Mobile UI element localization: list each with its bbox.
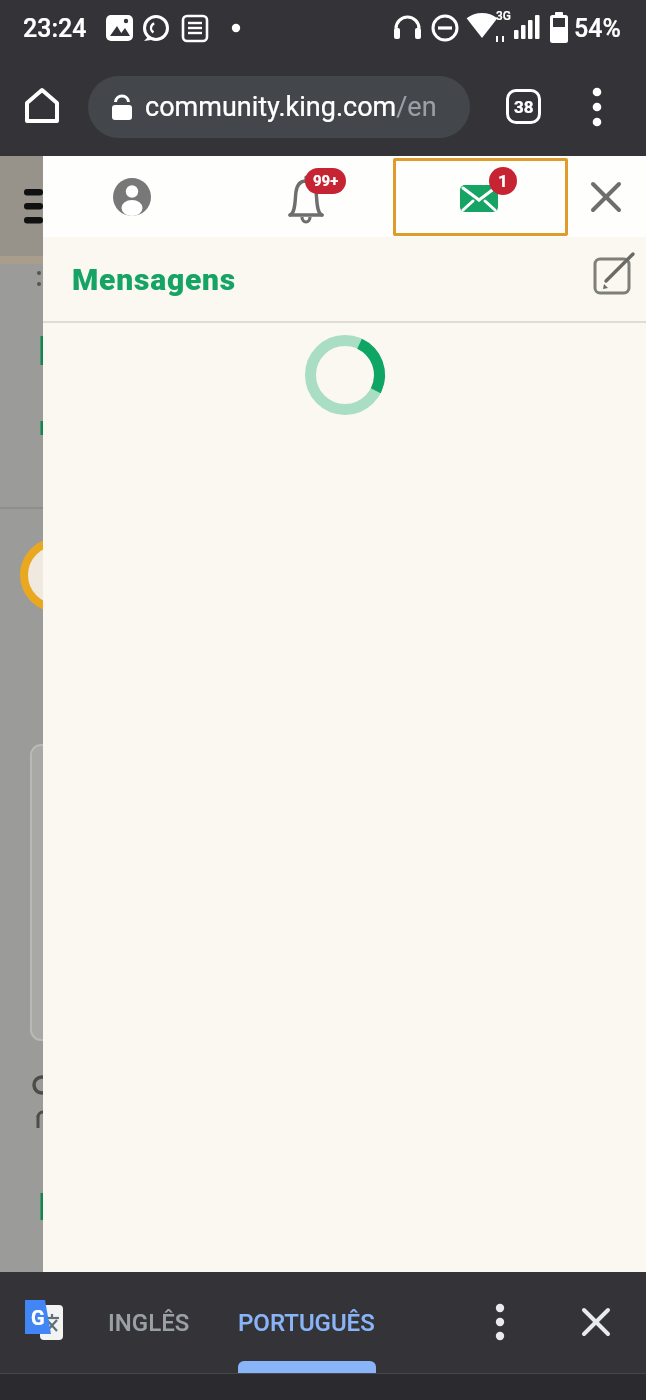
staticText: 3G	[496, 9, 511, 23]
staticText: 1	[498, 171, 508, 191]
button[interactable]: 1	[393, 158, 568, 236]
button[interactable]	[570, 1272, 626, 1373]
button[interactable]	[478, 1272, 522, 1373]
staticText: Mensagens	[72, 262, 237, 297]
button[interactable]	[107, 172, 157, 222]
button[interactable]: G	[20, 1298, 68, 1346]
button[interactable]: 99+	[279, 156, 389, 237]
button[interactable]: community.king.com/en	[88, 76, 470, 138]
button[interactable]	[595, 252, 639, 296]
staticText: 54%	[574, 14, 621, 43]
staticText: G	[31, 1306, 45, 1329]
button[interactable]	[583, 174, 629, 220]
staticText: community.king.com/en	[145, 91, 437, 123]
staticText: 99+	[313, 172, 339, 190]
staticText: 38	[514, 97, 534, 117]
button[interactable]: INGLÊS	[100, 1272, 198, 1373]
button[interactable]: PORTUGUÊS	[230, 1272, 383, 1373]
button[interactable]: 38	[506, 89, 541, 124]
button[interactable]	[0, 57, 60, 156]
button[interactable]	[575, 57, 619, 156]
staticText: INGLÊS	[108, 1309, 190, 1337]
staticText: PORTUGUÊS	[238, 1309, 375, 1337]
staticText: 23:24	[23, 14, 87, 43]
